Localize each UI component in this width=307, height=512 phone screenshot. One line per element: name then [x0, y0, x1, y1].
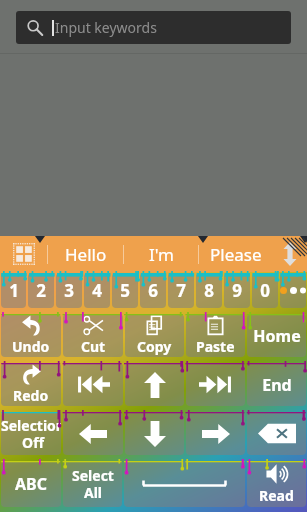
button[interactable]: Paste — [186, 314, 245, 357]
staticText: 9 — [232, 279, 242, 302]
button[interactable]: Move down — [125, 412, 184, 455]
button[interactable]: Selection Off — [1, 412, 61, 455]
button[interactable]: ABC — [1, 461, 61, 507]
staticText: 3 — [64, 279, 74, 302]
staticText: Selection Off — [1, 416, 61, 452]
button[interactable]: 3 — [56, 273, 82, 308]
button[interactable]: Hello — [48, 236, 123, 272]
button[interactable]: Home — [247, 314, 306, 357]
button[interactable]: Cut — [63, 314, 123, 357]
staticText: ABC — [15, 473, 47, 495]
staticText: Copy — [137, 337, 172, 356]
button[interactable]: Move right — [186, 412, 245, 455]
button[interactable]: Move left — [63, 412, 123, 455]
staticText: Undo — [12, 337, 50, 356]
button[interactable]: 7 — [168, 273, 194, 308]
staticText: Please — [210, 243, 262, 266]
staticText: I'm — [149, 243, 174, 266]
staticText: Read — [259, 486, 294, 505]
staticText: 6 — [148, 279, 158, 302]
staticText: Hello — [65, 243, 107, 266]
staticText: 4 — [92, 279, 102, 302]
staticText: 2 — [36, 279, 46, 302]
button[interactable]: Keyboard themes — [0, 236, 47, 272]
button[interactable]: 6 — [140, 273, 166, 308]
button[interactable]: 8 — [196, 273, 222, 308]
staticText: Home — [253, 325, 301, 347]
button[interactable]: 0 — [252, 273, 278, 308]
button[interactable]: 9 — [224, 273, 250, 308]
button[interactable]: Backspace — [247, 412, 306, 455]
button[interactable]: Resize keyboard — [273, 236, 307, 272]
button[interactable]: Input keywords — [16, 11, 291, 44]
button[interactable]: Read aloud — [247, 461, 306, 507]
button[interactable]: Please — [199, 236, 273, 272]
staticText: Select All — [72, 466, 114, 502]
staticText: 1 — [9, 279, 19, 302]
staticText: End — [262, 374, 292, 396]
button[interactable]: End — [247, 363, 306, 406]
button[interactable]: 4 — [84, 273, 110, 308]
button[interactable]: Redo — [1, 363, 61, 406]
button[interactable]: Space — [124, 461, 245, 507]
staticText: Cut — [81, 337, 106, 356]
button[interactable]: Undo — [1, 314, 61, 357]
staticText: 8 — [204, 279, 214, 302]
button[interactable]: Move up — [125, 363, 184, 406]
button[interactable]: More symbols — [280, 273, 306, 308]
button[interactable]: I'm — [124, 236, 198, 272]
button[interactable]: 2 — [28, 273, 54, 308]
staticText: 5 — [120, 279, 130, 302]
button[interactable]: Next — [186, 363, 245, 406]
staticText: Paste — [196, 337, 235, 356]
staticText: Input keywords — [55, 18, 157, 37]
button[interactable]: Previous — [63, 363, 123, 406]
button[interactable]: 5 — [112, 273, 138, 308]
staticText: Redo — [13, 386, 49, 405]
button[interactable]: Copy — [125, 314, 184, 357]
button[interactable]: 1 — [1, 273, 26, 308]
staticText: 7 — [176, 279, 186, 302]
button[interactable]: Select All — [63, 461, 122, 507]
staticText: 0 — [260, 279, 270, 302]
